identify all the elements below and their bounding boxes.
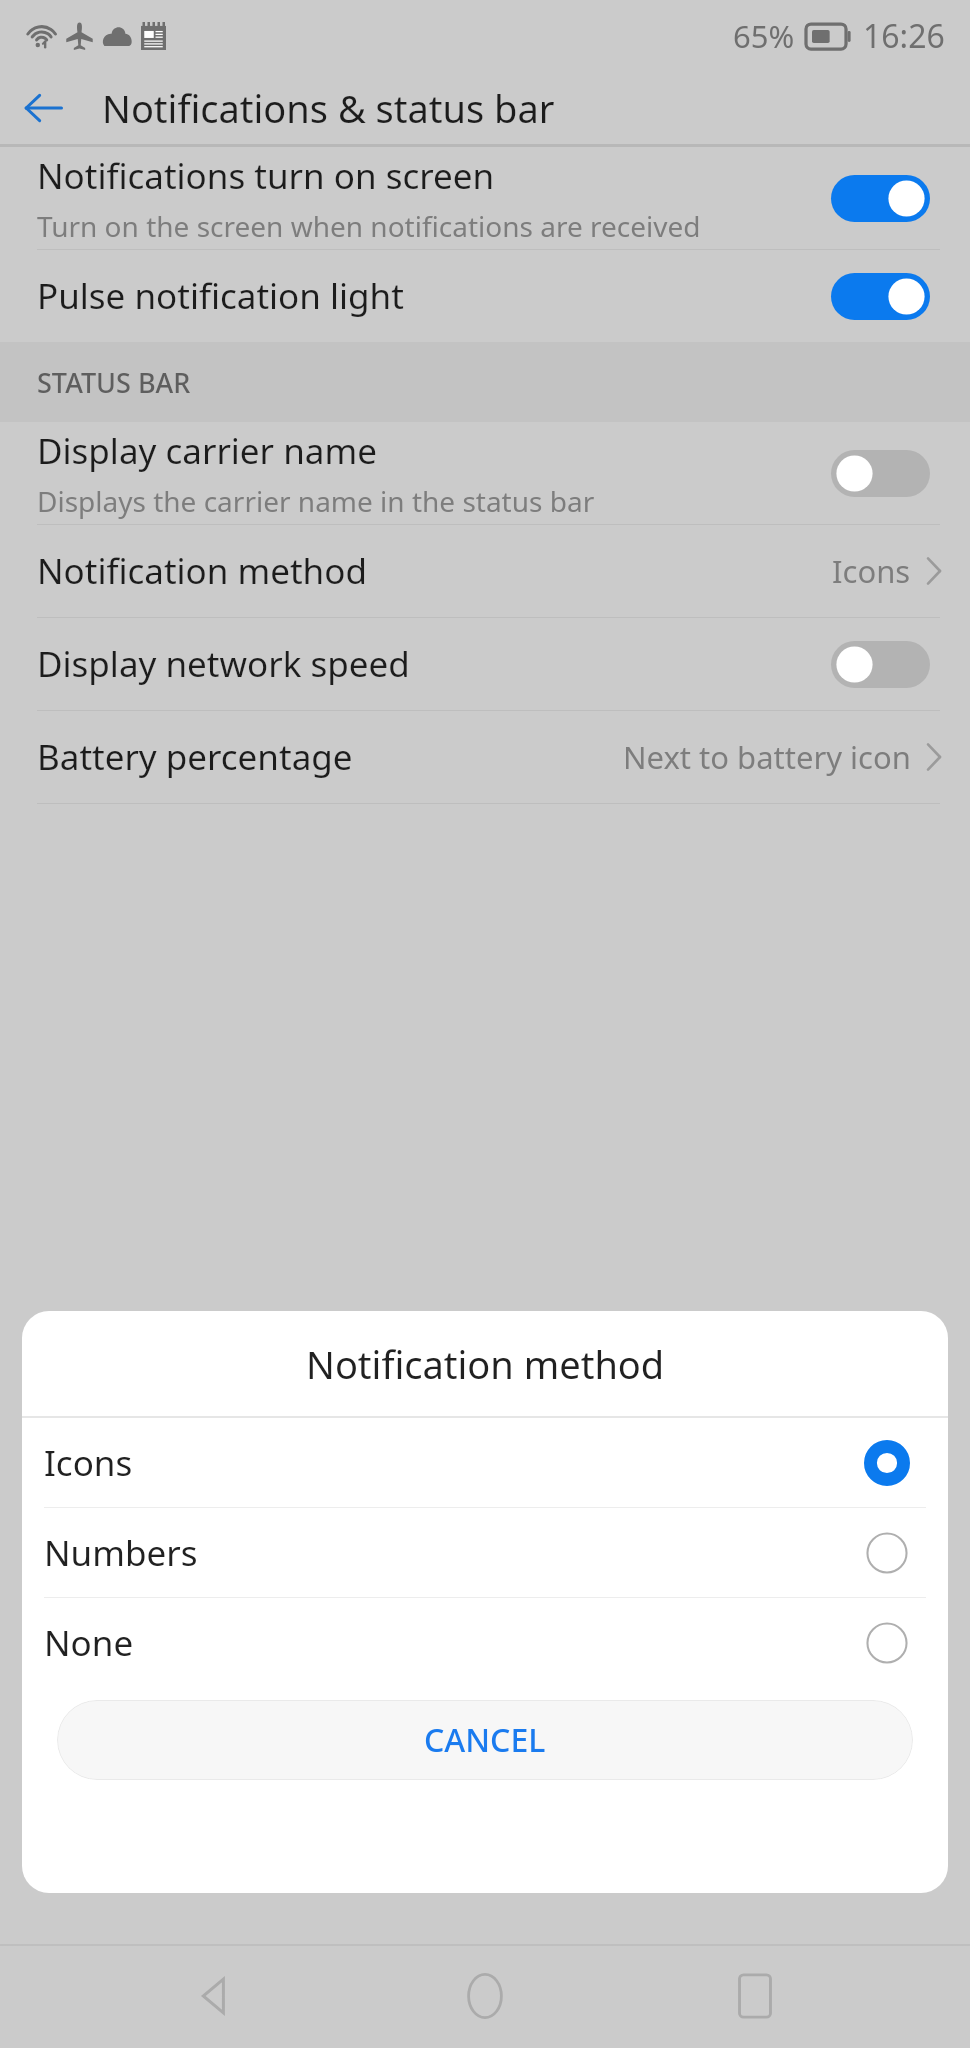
- staticText: STATUS BAR: [37, 364, 191, 401]
- staticText: Icons: [832, 550, 911, 592]
- staticText: Notification method: [306, 1338, 665, 1390]
- staticText: Displays the carrier name in the status …: [37, 482, 595, 520]
- staticText: Notification method: [37, 547, 832, 595]
- button[interactable]: Back: [160, 1944, 270, 2048]
- staticText: Display carrier name: [37, 427, 377, 475]
- button[interactable]: Pulse notification light: [0, 250, 970, 342]
- staticText: Notifications turn on screen: [37, 152, 495, 200]
- button[interactable]: Battery percentage: [0, 711, 970, 803]
- button[interactable]: Notifications turn on screen: [0, 147, 970, 249]
- staticText: Battery percentage: [37, 733, 623, 781]
- button[interactable]: Back: [8, 73, 78, 143]
- button[interactable]: None: [22, 1598, 948, 1687]
- button[interactable]: CANCEL: [57, 1700, 913, 1780]
- button[interactable]: Recent apps: [700, 1944, 810, 2048]
- button[interactable]: Display carrier name: [0, 422, 970, 524]
- staticText: CANCEL: [424, 1718, 546, 1762]
- button[interactable]: Icons: [22, 1418, 948, 1507]
- button[interactable]: Home: [430, 1944, 540, 2048]
- staticText: Numbers: [44, 1529, 864, 1577]
- staticText: Icons: [44, 1439, 864, 1487]
- staticText: Pulse notification light: [37, 272, 404, 320]
- staticText: Notifications & status bar: [102, 82, 555, 134]
- button[interactable]: Notification method: [0, 525, 970, 617]
- staticText: Next to battery icon: [623, 736, 911, 778]
- staticText: Display network speed: [37, 640, 410, 688]
- staticText: 65%: [733, 15, 795, 57]
- button[interactable]: Display network speed: [0, 618, 970, 710]
- staticText: Turn on the screen when notifications ar…: [37, 207, 701, 245]
- staticText: None: [44, 1619, 864, 1667]
- staticText: 16:26: [863, 14, 945, 58]
- button[interactable]: Numbers: [22, 1508, 948, 1597]
